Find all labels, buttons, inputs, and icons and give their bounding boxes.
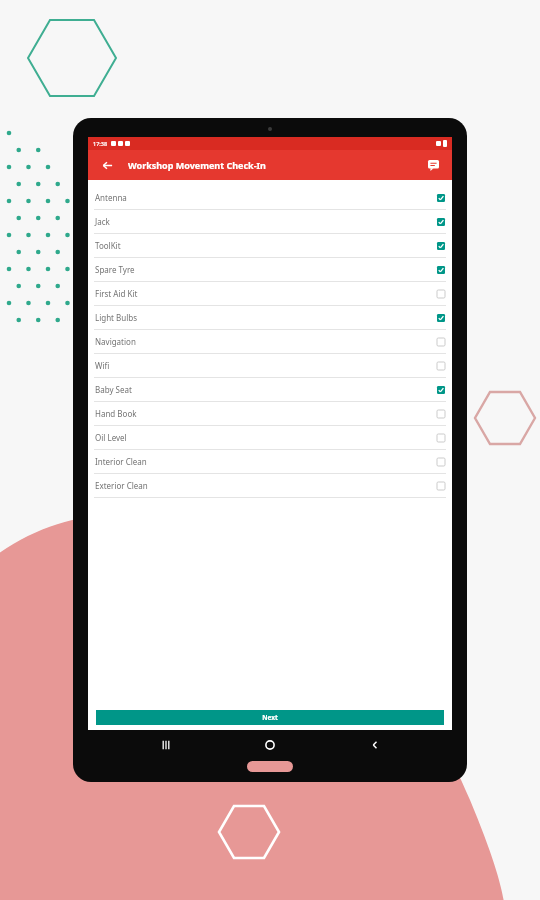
button[interactable]: Home [258,733,282,757]
staticText: Exterior Clean [95,480,148,491]
button[interactable]: Navigation [88,330,452,354]
button[interactable]: Messages [424,156,442,174]
staticText: Oil Level [95,432,127,443]
button[interactable]: Baby Seat [88,378,452,402]
staticText: Interior Clean [95,456,147,467]
button[interactable]: Next [96,710,444,725]
staticText: ToolKit [95,240,121,251]
staticText: 17:38 [93,140,108,147]
button[interactable]: Light Bulbs [88,306,452,330]
staticText: Hand Book [95,408,137,419]
button[interactable]: Jack [88,210,452,234]
staticText: Navigation [95,336,136,347]
staticText: Light Bulbs [95,312,138,323]
button[interactable]: Back [363,733,387,757]
staticText: Jack [95,216,110,227]
button[interactable]: Oil Level [88,426,452,450]
staticText: Antenna [95,192,127,203]
staticText: Baby Seat [95,384,132,395]
button[interactable]: Hand Book [88,402,452,426]
button[interactable]: ToolKit [88,234,452,258]
staticText: Wifi [95,360,110,371]
button[interactable]: Exterior Clean [88,474,452,498]
button[interactable]: Back [98,156,116,174]
staticText: Workshop Movement Check-In [128,159,266,171]
staticText: Next [262,713,278,722]
staticText: First Aid Kit [95,288,138,299]
button[interactable]: Recents [154,733,178,757]
button[interactable]: First Aid Kit [88,282,452,306]
button[interactable]: Wifi [88,354,452,378]
button[interactable]: Spare Tyre [88,258,452,282]
button[interactable]: Antenna [88,186,452,210]
staticText: Spare Tyre [95,264,135,275]
button[interactable]: Interior Clean [88,450,452,474]
